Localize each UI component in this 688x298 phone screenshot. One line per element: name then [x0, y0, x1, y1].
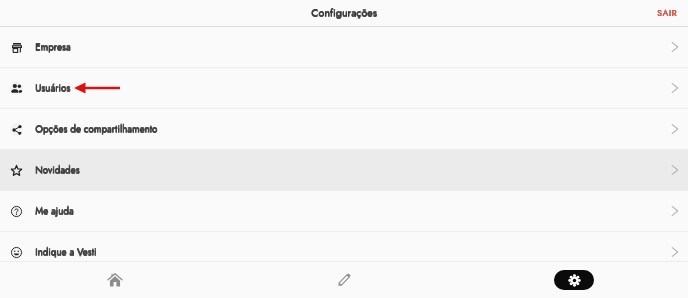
button[interactable]: Início [0, 261, 230, 298]
staticText: Usuários [35, 81, 71, 95]
staticText: Usuários [35, 82, 71, 96]
button[interactable]: Usuários [0, 68, 688, 108]
button[interactable]: Me ajuda [0, 191, 688, 231]
button[interactable]: Opções de compartilhamento [0, 109, 688, 149]
staticText: Opções de compartilhamento [35, 122, 158, 136]
button[interactable]: Empresa [0, 27, 688, 67]
staticText: Novidades [35, 164, 80, 178]
staticText: Novidades [35, 163, 80, 177]
staticText: Novidades [35, 164, 80, 178]
staticText: SAIR [657, 7, 678, 19]
staticText: Indique a Vesti [35, 245, 97, 259]
staticText: Empresa [35, 40, 71, 54]
staticText: Indique a Vesti [35, 245, 97, 259]
button[interactable]: Editar [230, 261, 459, 298]
staticText: Novidades [35, 163, 80, 177]
staticText: Indique a Vesti [35, 246, 97, 260]
button[interactable]: Indique a Vesti [0, 232, 688, 272]
staticText: SAIR [657, 7, 678, 19]
staticText: Me ajuda [35, 204, 74, 218]
staticText: Usuários [35, 81, 71, 95]
staticText: Configurações [311, 6, 377, 21]
staticText: Usuários [35, 82, 71, 96]
staticText: Empresa [35, 40, 71, 54]
staticText: Opções de compartilhamento [35, 122, 158, 136]
staticText: Me ajuda [35, 205, 74, 219]
staticText: Configurações [311, 6, 377, 21]
staticText: Empresa [35, 40, 71, 54]
button[interactable]: Novidades [0, 150, 688, 190]
staticText: SAIR [657, 7, 678, 19]
staticText: Indique a Vesti [35, 246, 97, 260]
staticText: Configurações [311, 5, 377, 20]
staticText: Configurações [311, 5, 377, 20]
button[interactable]: SAIR [647, 3, 688, 23]
staticText: Empresa [35, 40, 71, 54]
staticText: Me ajuda [35, 205, 74, 219]
staticText: Me ajuda [35, 204, 74, 218]
staticText: SAIR [657, 7, 678, 19]
button[interactable]: Configurações [554, 270, 594, 290]
staticText: Opções de compartilhamento [35, 123, 158, 137]
staticText: Opções de compartilhamento [35, 123, 158, 137]
